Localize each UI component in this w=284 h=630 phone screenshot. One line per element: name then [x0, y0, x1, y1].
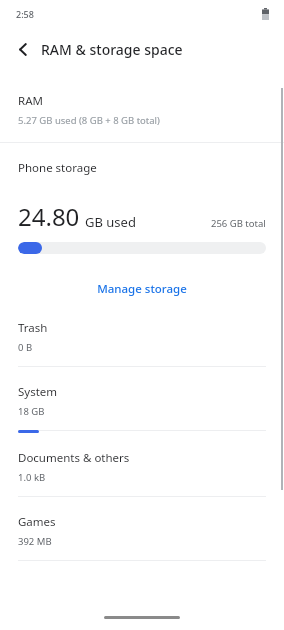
button[interactable]: Trash	[0, 320, 284, 384]
staticText: GB used	[85, 213, 136, 231]
staticText: System	[18, 384, 58, 400]
staticText: Trash	[18, 320, 48, 336]
staticText: Manage storage	[97, 281, 187, 297]
staticText: 0 B	[18, 341, 33, 354]
staticText: 392 MB	[18, 535, 52, 548]
staticText: Games	[18, 514, 56, 530]
button[interactable]: Manage storage	[0, 275, 284, 303]
button[interactable]: Games	[0, 514, 284, 578]
staticText: RAM	[18, 93, 43, 109]
button[interactable]: Back	[8, 34, 38, 64]
staticText: 2:58	[16, 8, 34, 20]
staticText: 5.27 GB used (8 GB + 8 GB total)	[18, 114, 160, 127]
staticText: 1.0 kB	[18, 471, 46, 484]
staticText: Phone storage	[18, 160, 97, 176]
button[interactable]: Documents & others	[0, 450, 284, 514]
button[interactable]: RAM	[0, 93, 284, 127]
staticText: 18 GB	[18, 405, 45, 418]
button[interactable]: System	[0, 384, 284, 450]
staticText: 24.80	[18, 200, 80, 233]
staticText: 256 GB total	[211, 217, 266, 230]
staticText: RAM & storage space	[41, 40, 183, 59]
staticText: Documents & others	[18, 450, 130, 466]
